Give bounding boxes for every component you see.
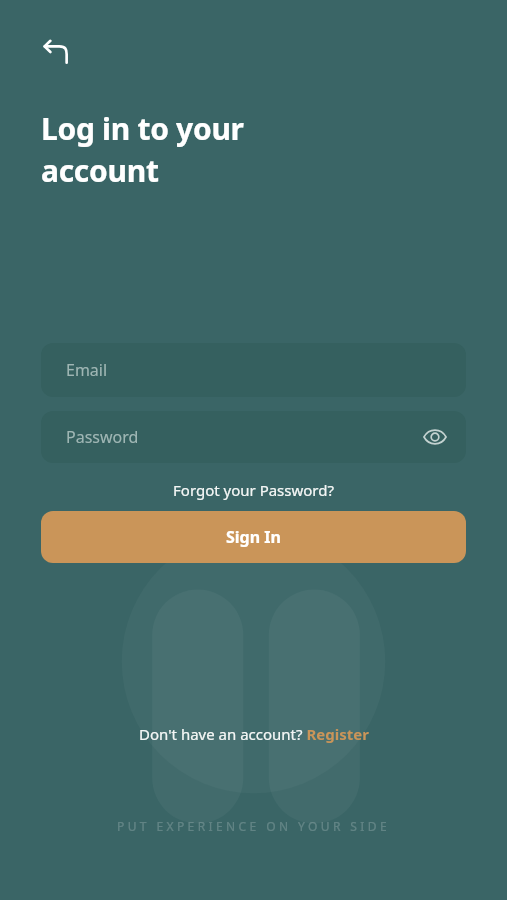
staticText: Email — [66, 359, 108, 381]
button[interactable]: Show password — [416, 418, 454, 456]
button[interactable]: Don't have an account? Register — [129, 720, 379, 748]
button[interactable]: Password — [41, 411, 466, 463]
staticText: Forgot your Password? — [173, 480, 334, 500]
staticText: PUT EXPERIENCE ON YOUR SIDE — [117, 818, 390, 834]
button[interactable]: Email — [41, 343, 466, 397]
button[interactable]: Sign In — [41, 511, 466, 563]
staticText: Password — [66, 426, 139, 448]
button[interactable]: Forgot your Password? — [163, 477, 344, 503]
staticText: Sign In — [226, 526, 281, 548]
button[interactable]: Back — [34, 30, 78, 74]
staticText: Log in to your account — [41, 108, 244, 191]
staticText: Don't have an account? Register — [139, 724, 369, 744]
